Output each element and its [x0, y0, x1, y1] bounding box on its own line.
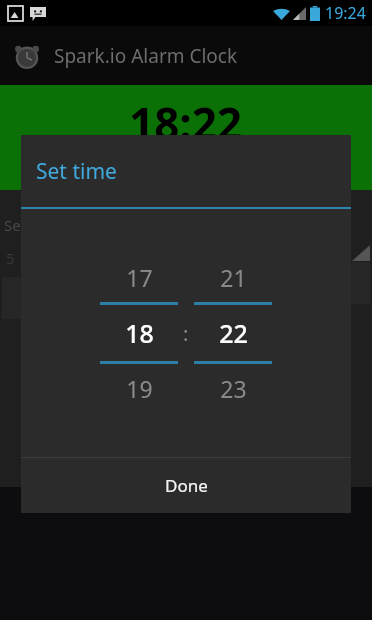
staticText: Set time — [36, 157, 117, 186]
staticText: 18 — [125, 316, 154, 350]
other: Wi-Fi — [273, 7, 290, 20]
other: Photo — [8, 6, 23, 21]
staticText: 19:24 — [325, 2, 366, 24]
other: Signal — [293, 7, 306, 20]
staticText: : — [183, 320, 189, 347]
staticText: 22 — [219, 316, 248, 350]
staticText: 18:22 — [129, 93, 243, 153]
staticText: Done — [165, 474, 208, 497]
button[interactable]: 21 — [194, 253, 272, 413]
staticText: Spark.io Alarm Clock — [54, 43, 238, 69]
other: Battery — [310, 6, 320, 21]
staticText: 21 — [220, 262, 247, 293]
staticText: 17 — [126, 262, 153, 293]
staticText: Se — [4, 215, 21, 235]
other: Alarm — [12, 41, 42, 71]
staticText: 23 — [220, 373, 247, 404]
button[interactable]: 17 — [100, 253, 178, 413]
button[interactable]: Done — [21, 458, 351, 513]
staticText: 5 — [6, 248, 15, 268]
other: Message — [30, 7, 46, 21]
button[interactable]: Alarm — [0, 26, 372, 85]
staticText: 19 — [126, 373, 153, 404]
